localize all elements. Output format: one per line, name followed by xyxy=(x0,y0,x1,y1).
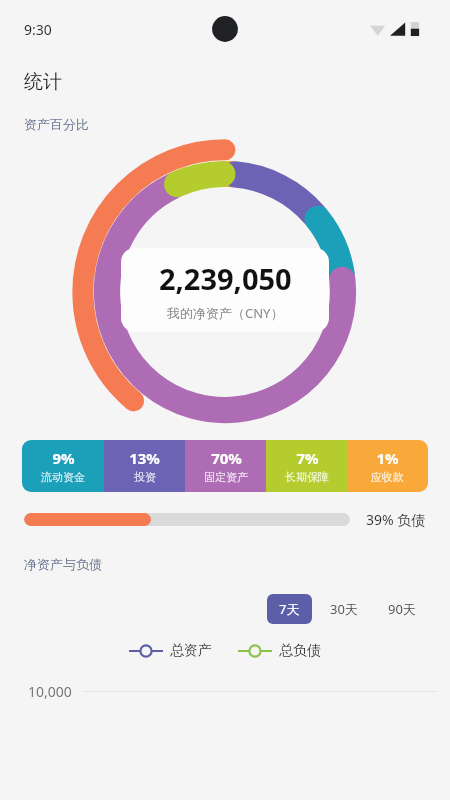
button[interactable]: 总负债 xyxy=(238,642,321,660)
staticText: 资产百分比 xyxy=(24,116,89,132)
staticText: 我的净资产（CNY） xyxy=(167,304,284,322)
staticText: 10,000 xyxy=(28,682,72,701)
staticText: 7% xyxy=(296,448,319,468)
staticText: 投资 xyxy=(134,470,156,484)
staticText: 70% xyxy=(211,448,242,468)
staticText: 净资产与负债 xyxy=(24,556,102,572)
staticText: 1% xyxy=(376,448,399,468)
staticText: 应收款 xyxy=(371,470,404,484)
staticText: 固定资产 xyxy=(204,470,248,484)
staticText: 总负债 xyxy=(279,642,321,660)
staticText: 2,239,050 xyxy=(159,259,292,298)
staticText: 30天 xyxy=(330,600,358,618)
button[interactable]: 7天 xyxy=(267,594,312,624)
button[interactable]: 30天 xyxy=(318,594,370,624)
button[interactable]: 9% xyxy=(22,440,104,492)
button[interactable]: 1% xyxy=(347,440,428,492)
button[interactable]: 7% xyxy=(266,440,347,492)
staticText: 流动资金 xyxy=(41,470,85,484)
button[interactable]: 90天 xyxy=(376,594,428,624)
staticText: 39% 负债 xyxy=(366,510,426,529)
staticText: 9:30 xyxy=(24,20,52,39)
button[interactable]: 13% xyxy=(104,440,185,492)
button[interactable]: 2,239,050 xyxy=(121,248,329,332)
staticText: 9% xyxy=(52,448,75,468)
staticText: 长期保障 xyxy=(285,470,329,484)
staticText: 统计 xyxy=(24,70,62,94)
button[interactable]: 总资产 xyxy=(129,642,212,660)
staticText: 13% xyxy=(129,448,160,468)
staticText: 7天 xyxy=(279,600,300,618)
button[interactable]: 70% xyxy=(185,440,266,492)
staticText: 总资产 xyxy=(170,642,212,660)
staticText: 90天 xyxy=(388,600,416,618)
